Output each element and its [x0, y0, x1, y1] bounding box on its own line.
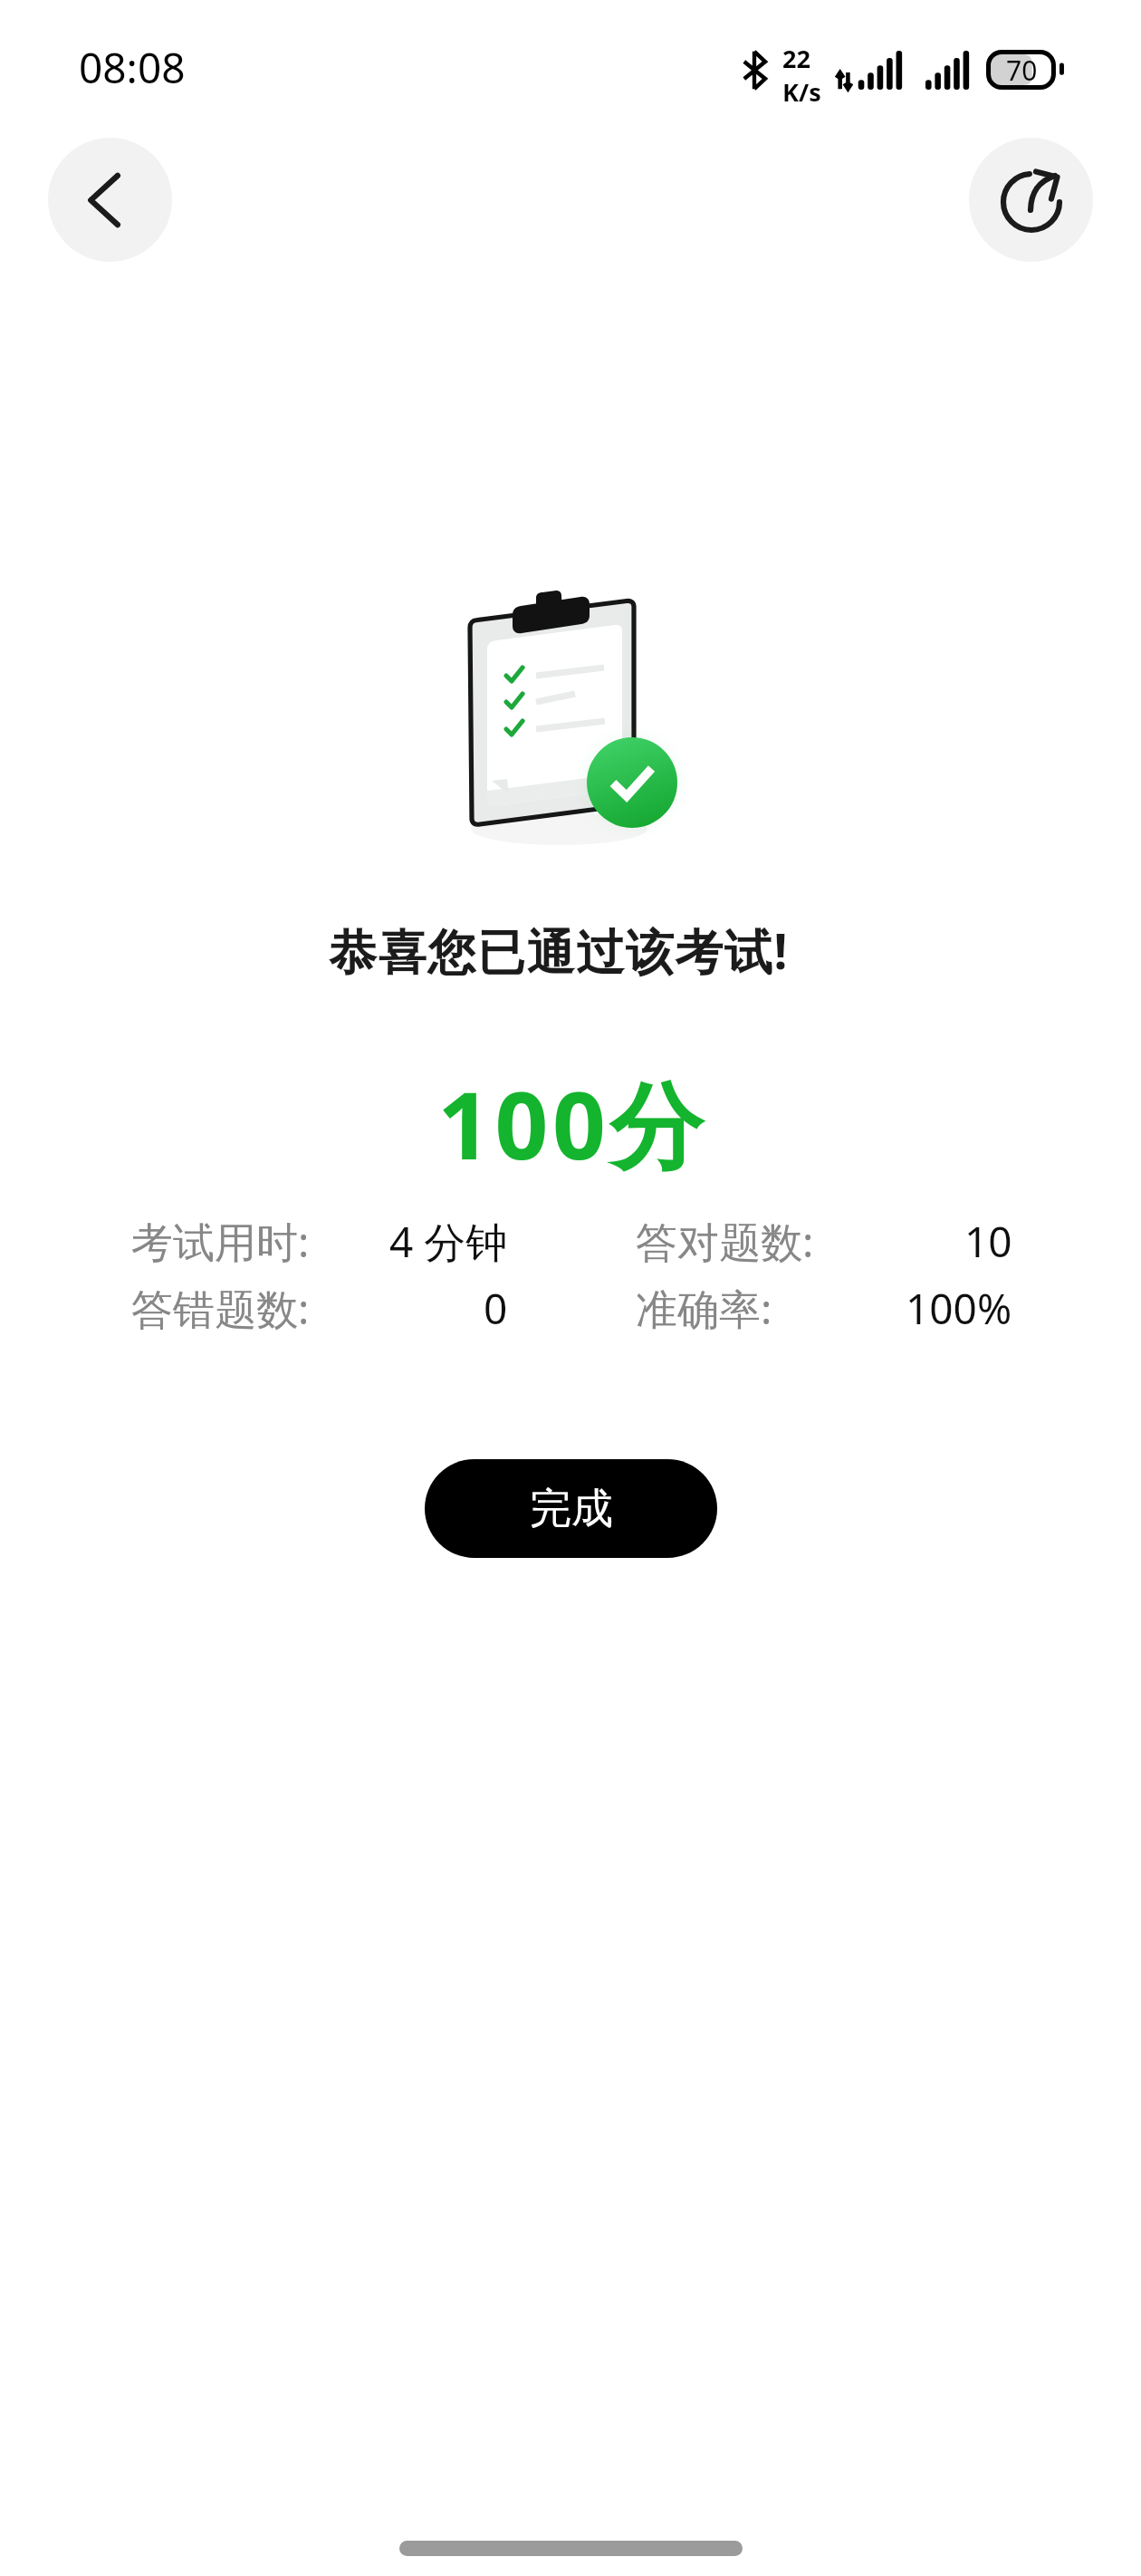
staticText: 答对题数:: [636, 1213, 814, 1270]
staticText: 准确率:: [636, 1280, 772, 1337]
button[interactable]: 完成: [425, 1459, 717, 1558]
staticText: 答错题数:: [131, 1280, 310, 1337]
button[interactable]: Back: [48, 138, 172, 262]
staticText: 10: [964, 1213, 1012, 1270]
staticText: 恭喜您已通过该考试!: [329, 918, 789, 983]
button[interactable]: Share: [969, 138, 1093, 262]
staticText: 100分: [437, 1060, 707, 1187]
staticText: 考试用时:: [131, 1213, 310, 1270]
staticText: K/s: [782, 75, 821, 109]
staticText: 22: [782, 42, 810, 75]
staticText: 完成: [530, 1483, 613, 1535]
staticText: 0: [484, 1280, 508, 1337]
staticText: 08:08: [79, 39, 186, 96]
staticText: 100%: [906, 1280, 1012, 1337]
staticText: 70: [1006, 52, 1038, 89]
staticText: 4 分钟: [389, 1213, 508, 1270]
